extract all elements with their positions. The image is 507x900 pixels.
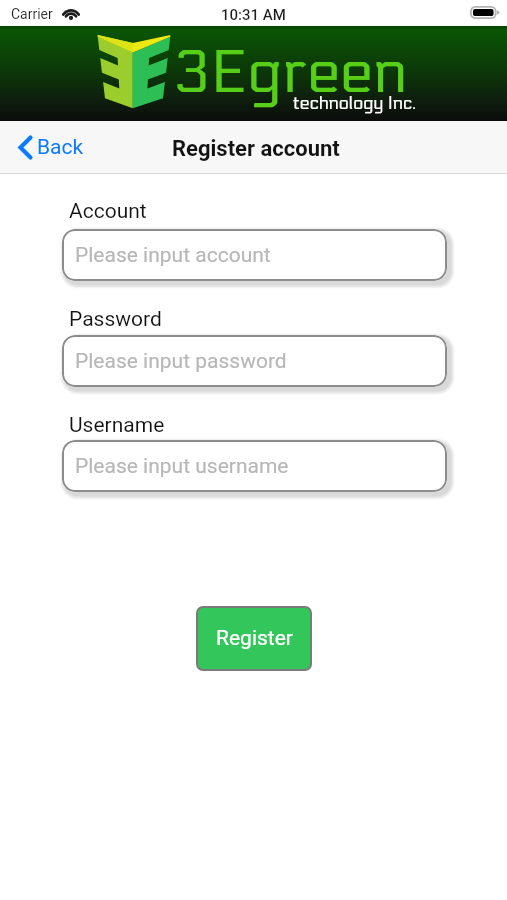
staticText: technology Inc. <box>293 93 416 114</box>
staticText: Register <box>216 626 293 651</box>
button[interactable]: Please input password <box>62 335 447 387</box>
staticText: Please input account <box>75 243 271 268</box>
staticText: Password <box>69 307 162 332</box>
staticText: Please input password <box>75 349 287 374</box>
button[interactable]: Please input account <box>62 229 447 281</box>
staticText: 10:31 AM <box>221 6 286 24</box>
button[interactable]: Back <box>13 127 90 168</box>
staticText: Please input username <box>75 454 289 479</box>
staticText: Username <box>69 413 165 438</box>
staticText: 3Egreen <box>173 37 407 108</box>
button[interactable]: Register <box>198 608 310 669</box>
staticText: Register account <box>172 136 340 162</box>
staticText: Back <box>37 135 84 160</box>
staticText: Carrier <box>11 6 53 22</box>
button[interactable]: Please input username <box>62 440 447 492</box>
staticText: Account <box>69 199 147 224</box>
